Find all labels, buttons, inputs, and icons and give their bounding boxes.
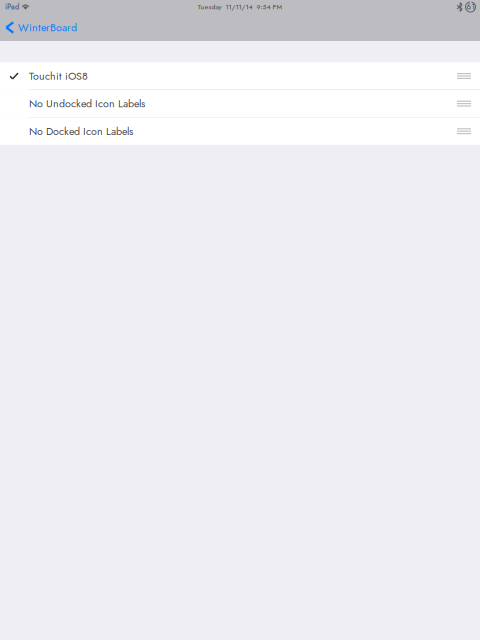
button[interactable]: Reorder No Docked Icon Labels (447, 118, 480, 145)
staticText: Tuesday 11/11/14 9:54 PM (197, 2, 282, 12)
button[interactable]: Touchit iOS8 (0, 62, 447, 89)
staticText: No Undocked Icon Labels (29, 96, 145, 111)
button[interactable]: Reorder Touchit iOS8 (447, 62, 480, 89)
staticText: iPad (5, 2, 19, 12)
button[interactable]: No Docked Icon Labels (0, 118, 447, 145)
staticText: 61 (466, 2, 474, 12)
button[interactable]: Reorder No Undocked Icon Labels (447, 90, 480, 117)
button[interactable]: WinterBoard (0, 14, 85, 41)
staticText: WinterBoard (18, 20, 77, 35)
staticText: Touchit iOS8 (29, 68, 88, 84)
button[interactable]: No Undocked Icon Labels (0, 90, 447, 117)
staticText: No Docked Icon Labels (29, 123, 133, 139)
